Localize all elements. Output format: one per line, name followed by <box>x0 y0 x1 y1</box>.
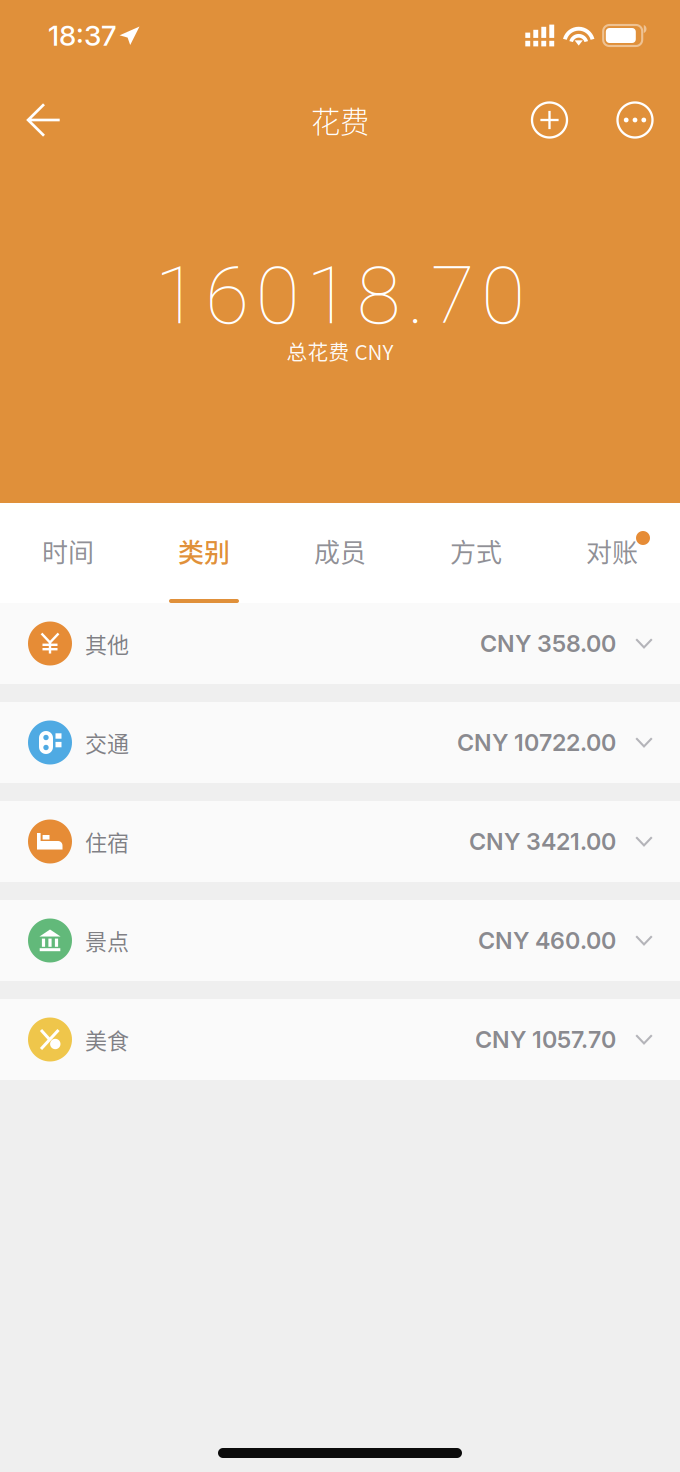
staticText: 成员 <box>314 532 366 570</box>
staticText: 总花费 CNY <box>286 336 393 366</box>
button[interactable]: 美食 <box>0 999 680 1080</box>
staticText: 其他 <box>85 628 129 659</box>
button[interactable]: 其他 <box>0 603 680 684</box>
button[interactable]: 对账 <box>544 503 680 603</box>
button[interactable]: 时间 <box>0 503 136 603</box>
staticText: 类别 <box>178 532 230 570</box>
staticText: CNY 460.00 <box>478 926 616 955</box>
button[interactable]: 类别 <box>136 503 272 603</box>
staticText: 18:37 <box>48 19 117 52</box>
staticText: CNY 1057.70 <box>475 1025 616 1054</box>
staticText: 花费 <box>311 99 369 141</box>
staticText: 时间 <box>42 532 94 570</box>
staticText: 美食 <box>85 1024 129 1055</box>
staticText: 交通 <box>85 727 129 758</box>
button[interactable]: 交通 <box>0 702 680 783</box>
button[interactable]: Add <box>495 90 604 150</box>
staticText: 住宿 <box>85 826 129 857</box>
staticText: CNY 3421.00 <box>469 827 616 856</box>
button[interactable]: 成员 <box>272 503 408 603</box>
button[interactable]: More <box>604 90 666 150</box>
staticText: 景点 <box>85 925 129 956</box>
button[interactable]: 方式 <box>408 503 544 603</box>
button[interactable]: 景点 <box>0 900 680 981</box>
staticText: 对账 <box>586 532 638 570</box>
staticText: 方式 <box>450 532 502 570</box>
button[interactable]: 住宿 <box>0 801 680 882</box>
staticText: CNY 10722.00 <box>457 728 616 757</box>
staticText: CNY 358.00 <box>480 629 616 658</box>
staticText: 16018.70 <box>155 249 525 343</box>
button[interactable]: Back <box>12 90 76 150</box>
